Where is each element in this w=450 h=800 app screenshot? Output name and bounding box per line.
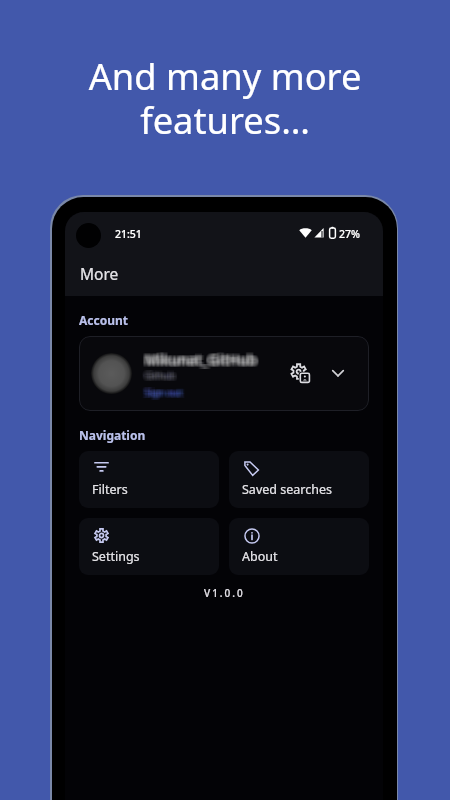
staticText: Mikunat_GitHub (145, 352, 257, 371)
staticText: Github (148, 367, 178, 379)
staticText: Sign out (145, 385, 183, 397)
button[interactable]: About (229, 518, 369, 575)
staticText: Mikunat_GitHub (143, 350, 255, 369)
staticText: Mikunat_GitHub (144, 348, 256, 367)
staticText: Github (147, 370, 177, 382)
staticText: Mikunat_GitHub (147, 349, 259, 368)
staticText: Sign out (148, 387, 186, 399)
staticText: Sign out (143, 388, 181, 400)
staticText: Mikunat_GitHub (144, 352, 256, 371)
staticText: Mikunat_GitHub (145, 349, 257, 368)
staticText: Github (146, 371, 176, 383)
staticText: Mikunat_GitHub (145, 348, 257, 367)
staticText: Sign out (145, 387, 183, 399)
staticText: Mikunat_GitHub (147, 348, 259, 367)
staticText: Mikunat_GitHub (146, 350, 258, 369)
staticText: Mikunat_GitHub (146, 351, 258, 370)
staticText: Sign out (142, 386, 180, 398)
staticText: Github (146, 368, 176, 380)
staticText: Mikunat_GitHub (145, 351, 257, 370)
staticText: Github (147, 369, 177, 381)
staticText: Sign out (148, 388, 186, 400)
button[interactable]: Manage account (284, 357, 316, 389)
staticText: Github (144, 368, 174, 380)
staticText: Sign out (145, 388, 183, 400)
staticText: Sign out (144, 387, 182, 399)
staticText: Mikunat_GitHub (146, 352, 258, 371)
staticText: Github (147, 367, 177, 379)
staticText: Github (148, 370, 178, 382)
staticText: Sign out (146, 384, 184, 396)
staticText: Sign out (143, 385, 181, 397)
staticText: Sign out (144, 388, 182, 400)
staticText: Mikunat_GitHub (147, 352, 259, 371)
staticText: Github (143, 367, 173, 379)
staticText: Mikunat_GitHub (142, 351, 254, 370)
staticText: Sign out (146, 388, 184, 400)
staticText: Github (142, 368, 172, 380)
staticText: Mikunat_GitHub (146, 349, 258, 368)
staticText: Sign out (145, 386, 183, 398)
staticText: Sign out (147, 384, 185, 396)
staticText: Mikunat_GitHub (143, 348, 255, 367)
staticText: Saved searches (242, 481, 332, 498)
staticText: Mikunat_GitHub (146, 348, 258, 367)
staticText: Mikunat_GitHub (147, 350, 259, 369)
staticText: Mikunat_GitHub (147, 351, 259, 370)
staticText: Sign out (148, 385, 186, 397)
staticText: Github (145, 369, 175, 381)
staticText: Github (142, 371, 172, 383)
staticText: Filters (92, 481, 128, 498)
staticText: V1.0.0 (204, 586, 245, 600)
staticText: Mikunat_GitHub (143, 352, 255, 371)
staticText: And many more features… (75, 51, 375, 145)
staticText: Sign out (144, 384, 182, 396)
staticText: Github (144, 371, 174, 383)
staticText: Github (143, 370, 173, 382)
staticText: Sign out (146, 386, 184, 398)
button[interactable]: Expand (324, 359, 352, 387)
staticText: Github (145, 367, 175, 379)
staticText: Sign out (144, 385, 182, 397)
staticText: Mikunat_GitHub (143, 351, 255, 370)
button[interactable]: Saved searches (229, 451, 369, 508)
staticText: Sign out (144, 386, 182, 398)
staticText: Github (142, 367, 172, 379)
staticText: Sign out (142, 385, 180, 397)
staticText: Mikunat_GitHub (148, 350, 260, 369)
staticText: Mikunat_GitHub (142, 352, 254, 371)
staticText: Github (143, 371, 173, 383)
staticText: Mikunat_GitHub (144, 351, 256, 370)
staticText: 21:51 (115, 227, 142, 241)
staticText: Sign out (148, 386, 186, 398)
staticText: Account (79, 312, 128, 328)
staticText: About (242, 548, 278, 565)
staticText: Github (143, 369, 173, 381)
staticText: Github (148, 371, 178, 383)
staticText: Github (145, 370, 175, 382)
staticText: Sign out (147, 385, 185, 397)
staticText: Sign out (147, 386, 185, 398)
staticText: Github (142, 370, 172, 382)
staticText: Github (146, 369, 176, 381)
staticText: Sign out (143, 387, 181, 399)
staticText: Settings (92, 548, 140, 565)
button[interactable]: Settings (79, 518, 219, 575)
button[interactable]: Filters (79, 451, 219, 508)
staticText: Github (147, 371, 177, 383)
staticText: Github (145, 371, 175, 383)
staticText: Sign out (142, 387, 180, 399)
staticText: Github (146, 367, 176, 379)
staticText: Sign out (143, 384, 181, 396)
staticText: Sign out (148, 384, 186, 396)
staticText: Sign out (145, 384, 183, 396)
staticText: 27% (339, 227, 360, 241)
staticText: Mikunat_GitHub (144, 350, 256, 369)
staticText: Mikunat_GitHub (143, 349, 255, 368)
staticText: Sign out (147, 388, 185, 400)
button[interactable]: Mikunat_GitHub (79, 336, 369, 411)
staticText: Mikunat_GitHub (142, 349, 254, 368)
staticText: Sign out (142, 384, 180, 396)
staticText: Mikunat_GitHub (145, 350, 257, 369)
staticText: Mikunat_GitHub (148, 351, 260, 370)
